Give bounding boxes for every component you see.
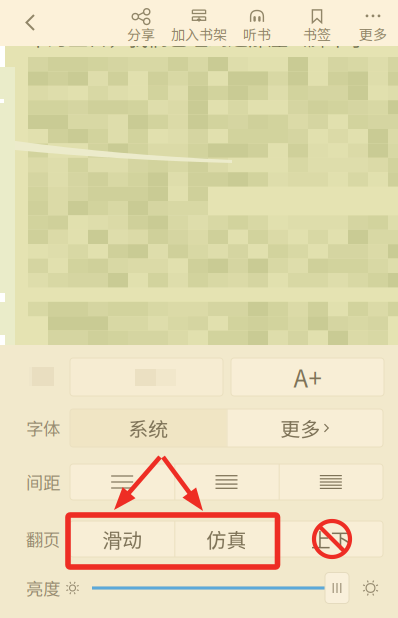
staticText: 亮度: [26, 575, 60, 601]
staticText: A+: [293, 360, 321, 394]
staticText: 更多: [359, 24, 387, 44]
staticText: 系统: [128, 413, 168, 442]
staticText: 加入书架: [171, 24, 227, 44]
button[interactable]: 仿真: [174, 521, 279, 557]
staticText: 翻页: [26, 526, 60, 552]
staticText: 仿真: [206, 524, 246, 553]
button[interactable]: 上下: [279, 521, 383, 557]
staticText: 上下: [311, 524, 351, 553]
button[interactable]: 更多: [226, 409, 383, 447]
button[interactable]: 窄行距: [279, 464, 383, 500]
button[interactable]: 滑动: [70, 521, 174, 557]
button[interactable]: 更多: [342, 1, 398, 47]
button[interactable]: 缩小字号: [70, 358, 223, 396]
staticText: 滑动: [102, 524, 142, 553]
button[interactable]: 分享: [110, 1, 172, 47]
staticText: 间距: [26, 469, 60, 495]
staticText: 更多: [280, 413, 320, 442]
button[interactable]: 返回: [8, 0, 52, 46]
button[interactable]: 听书: [226, 1, 288, 47]
button[interactable]: 中行距: [174, 464, 279, 500]
button[interactable]: 书签: [286, 1, 348, 47]
staticText: 字体: [26, 415, 60, 441]
staticText: 书签: [303, 24, 331, 44]
button[interactable]: 加入书架: [168, 1, 230, 47]
button[interactable]: 亮度: [325, 572, 349, 603]
button[interactable]: 系统: [70, 409, 226, 447]
staticText: 听书: [243, 24, 271, 44]
button[interactable]: 宽行距: [70, 464, 174, 500]
staticText: 分享: [127, 24, 155, 44]
staticText: 十月五日，我们已经到达那座山脚下了: [28, 22, 368, 51]
button[interactable]: A+: [231, 358, 384, 396]
